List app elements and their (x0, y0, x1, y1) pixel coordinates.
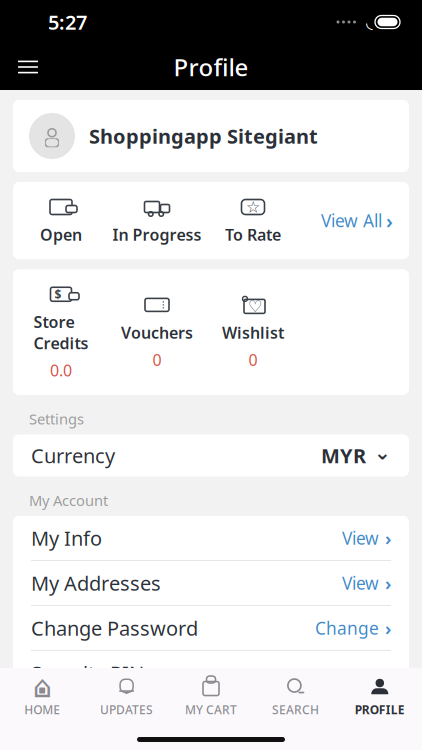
staticText: 0.0 (50, 360, 72, 381)
staticText: › (386, 207, 393, 234)
button[interactable]: Request Account Deletion (13, 696, 409, 740)
staticText: View (342, 526, 379, 549)
staticText: Open (40, 224, 82, 245)
staticText: PROFILE (355, 701, 405, 717)
staticText: My Addresses (31, 570, 161, 596)
staticText: View (342, 571, 379, 594)
staticText: MY CART (185, 701, 237, 717)
staticText: Change Password (31, 615, 198, 641)
button[interactable]: Menu (0, 49, 56, 85)
staticText: › (385, 706, 391, 730)
button[interactable]: ☆ (205, 194, 301, 247)
staticText: UPDATES (100, 701, 153, 717)
staticText: SEARCH (272, 701, 319, 717)
staticText: Vouchers (121, 322, 193, 343)
staticText: 5:27 (48, 9, 87, 35)
staticText: $ (54, 286, 61, 302)
staticText: ⌂ (33, 669, 52, 704)
button[interactable]: UPDATES (84, 668, 169, 717)
staticText: Settings (29, 409, 84, 428)
button[interactable]: In Progress (109, 194, 205, 247)
staticText: › (385, 526, 391, 550)
button[interactable]: Open (13, 194, 109, 247)
staticText: View All (321, 209, 382, 232)
button[interactable]: Vouchers (109, 292, 205, 372)
staticText: To Rate (225, 224, 281, 245)
staticText: Change (315, 616, 379, 639)
button[interactable]: SEARCH (253, 668, 338, 717)
staticText: Shoppingapp Sitegiant (89, 123, 318, 149)
staticText: My Account (29, 490, 108, 510)
staticText: In Progress (112, 224, 201, 245)
staticText: ☆ (246, 198, 260, 216)
button[interactable]: My Addresses (13, 561, 409, 605)
button[interactable]: Shoppingapp Sitegiant (13, 100, 409, 172)
staticText: › (385, 616, 391, 640)
button[interactable]: Security PIN (13, 651, 409, 695)
staticText: HOME (24, 701, 60, 717)
button[interactable]: $ (13, 281, 109, 383)
staticText: MYR (321, 442, 366, 469)
staticText: Store Credits (33, 311, 88, 354)
staticText: ♡ (248, 297, 262, 315)
staticText: ◟ (366, 12, 373, 32)
staticText: My Info (31, 525, 102, 551)
staticText: 0 (152, 349, 161, 370)
staticText: Profile (173, 51, 248, 83)
staticText: › (385, 571, 391, 595)
button[interactable]: My Info (13, 516, 409, 560)
staticText: Wishlist (222, 322, 284, 343)
button[interactable]: View All (321, 207, 409, 234)
button[interactable]: ⌂ (0, 668, 84, 717)
button[interactable]: MY CART (169, 668, 253, 717)
button[interactable]: Change Password (13, 606, 409, 650)
button[interactable]: PROFILE (338, 668, 422, 717)
staticText: ⌄ (374, 441, 391, 464)
staticText: Security PIN (31, 660, 144, 686)
button[interactable]: Currency (13, 434, 409, 476)
staticText: 0 (248, 349, 257, 370)
staticText: Currency (31, 442, 115, 469)
button[interactable]: ♡ (205, 292, 301, 372)
staticText: Request Account Deletion (31, 705, 270, 731)
